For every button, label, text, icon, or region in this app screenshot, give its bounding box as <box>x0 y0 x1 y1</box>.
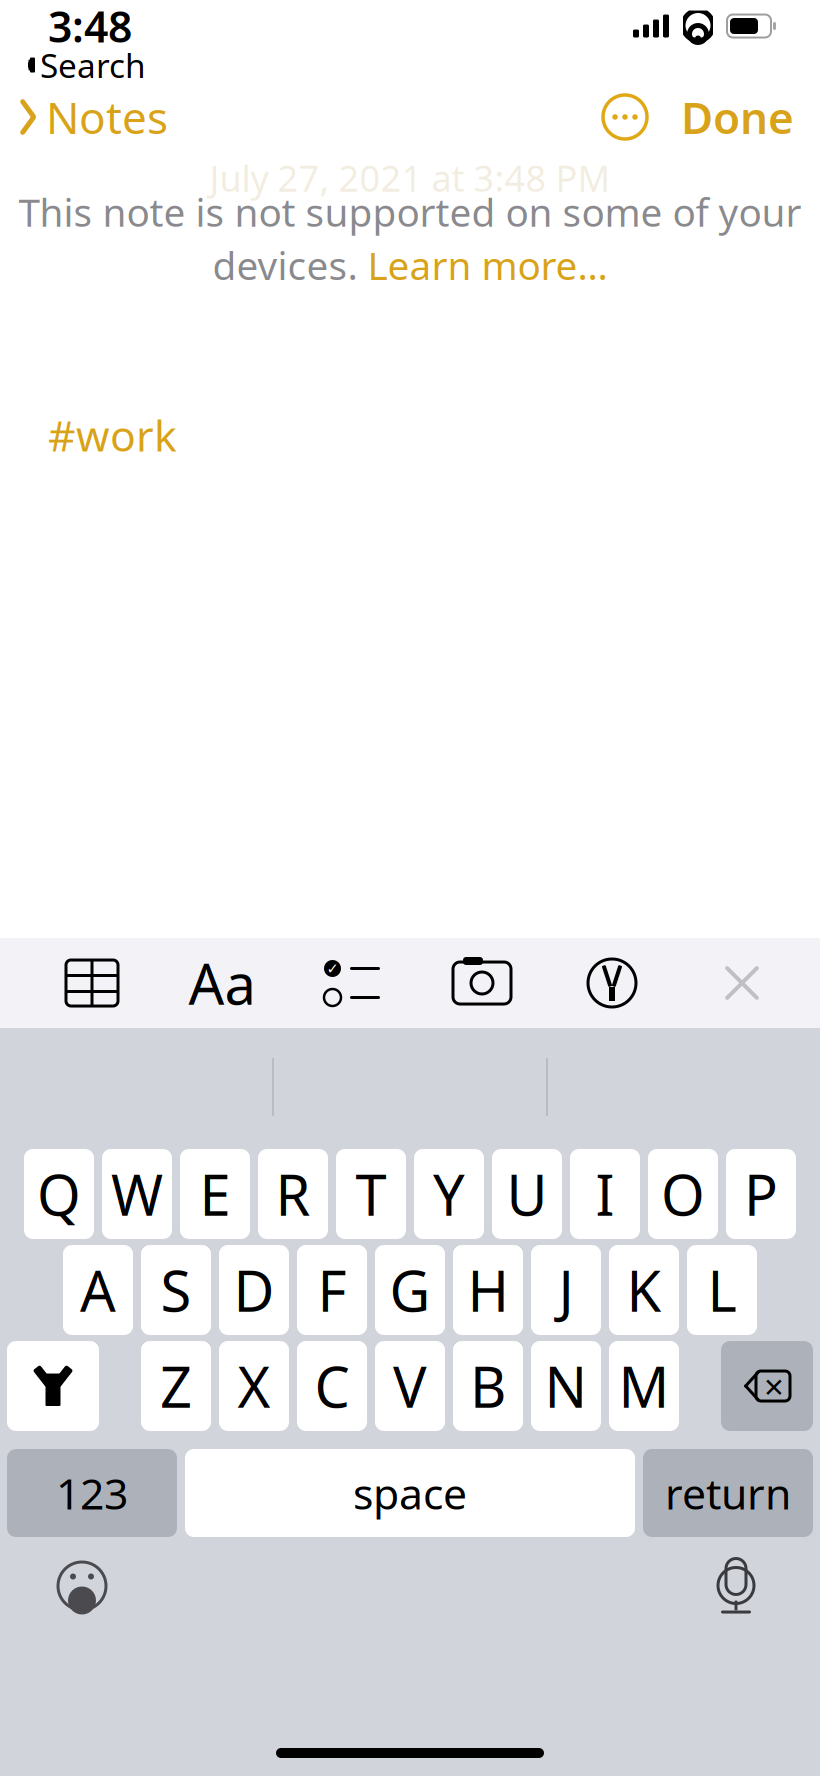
staticText: Q <box>37 1157 81 1231</box>
staticText: A <box>80 1253 116 1327</box>
staticText: G <box>389 1253 430 1327</box>
button[interactable]: X <box>219 1341 289 1431</box>
button[interactable]: A <box>63 1245 133 1335</box>
staticText: 3:48 <box>48 0 132 54</box>
button[interactable]: Markup <box>572 938 652 1028</box>
button[interactable]: S <box>141 1245 211 1335</box>
button[interactable]: V <box>375 1341 445 1431</box>
staticText: P <box>744 1157 778 1231</box>
button[interactable]: E <box>180 1149 250 1239</box>
staticText: O <box>661 1157 705 1231</box>
staticText: Learn more... <box>367 239 607 291</box>
button[interactable]: P <box>726 1149 796 1239</box>
button[interactable]: O <box>648 1149 718 1239</box>
button[interactable]: T <box>336 1149 406 1239</box>
button[interactable]: G <box>375 1245 445 1335</box>
button[interactable]: M <box>609 1341 679 1431</box>
button[interactable]: Checklist <box>312 938 392 1028</box>
button[interactable]: Dictation <box>696 1546 776 1626</box>
staticText: T <box>355 1157 386 1231</box>
button[interactable]: D <box>219 1245 289 1335</box>
staticText: J <box>558 1253 573 1327</box>
staticText: return <box>665 1465 791 1521</box>
staticText: Search <box>40 43 146 87</box>
button[interactable]: B <box>453 1341 523 1431</box>
button[interactable]: Search <box>0 48 156 82</box>
button[interactable]: Done <box>653 80 820 154</box>
staticText: D <box>233 1253 274 1327</box>
button[interactable]: H <box>453 1245 523 1335</box>
button[interactable]: J <box>531 1245 601 1335</box>
staticText: Y <box>433 1157 465 1231</box>
button[interactable]: Shift <box>7 1341 99 1431</box>
staticText: devices. <box>212 239 367 291</box>
button[interactable]: F <box>297 1245 367 1335</box>
staticText: K <box>626 1253 661 1327</box>
staticText: Notes <box>46 88 168 146</box>
staticText: July 27, 2021 at 3:48 PM <box>209 154 610 202</box>
staticText: R <box>275 1157 310 1231</box>
button[interactable]: More options <box>597 89 653 145</box>
staticText: S <box>160 1253 191 1327</box>
button[interactable]: I <box>570 1149 640 1239</box>
button[interactable]: Y <box>414 1149 484 1239</box>
button[interactable]: Z <box>141 1341 211 1431</box>
button[interactable]: Learn more... <box>367 239 607 291</box>
button[interactable]: C <box>297 1341 367 1431</box>
button[interactable]: Table <box>52 938 132 1028</box>
button[interactable]: R <box>258 1149 328 1239</box>
staticText: ✓ <box>326 960 338 977</box>
staticText: Aa <box>188 946 255 1020</box>
button[interactable]: Close keyboard <box>702 938 782 1028</box>
button[interactable]: W <box>102 1149 172 1239</box>
staticText: X <box>237 1349 270 1423</box>
button[interactable]: Q <box>24 1149 94 1239</box>
staticText: U <box>506 1157 547 1231</box>
button[interactable]: 123 <box>7 1449 177 1537</box>
staticText: L <box>707 1253 736 1327</box>
button[interactable]: Format <box>182 938 262 1028</box>
staticText: F <box>317 1253 346 1327</box>
button[interactable]: K <box>609 1245 679 1335</box>
staticText: #work <box>48 407 177 463</box>
staticText: W <box>111 1157 163 1231</box>
button[interactable]: Delete <box>721 1341 813 1431</box>
button[interactable]: Emoji <box>42 1546 122 1626</box>
staticText: H <box>467 1253 508 1327</box>
staticText: V <box>393 1349 427 1423</box>
staticText: × <box>764 1363 784 1409</box>
staticText: N <box>544 1349 587 1423</box>
button[interactable]: space <box>185 1449 635 1537</box>
staticText: B <box>470 1349 506 1423</box>
button[interactable]: L <box>687 1245 757 1335</box>
staticText: Z <box>160 1349 192 1423</box>
staticText: M <box>618 1349 669 1423</box>
staticText: E <box>199 1157 230 1231</box>
staticText: space <box>353 1465 467 1521</box>
staticText: Done <box>681 88 794 146</box>
button[interactable]: #work <box>48 403 177 467</box>
button[interactable]: return <box>643 1449 813 1537</box>
button[interactable]: U <box>492 1149 562 1239</box>
staticText: 123 <box>56 1465 128 1521</box>
staticText: C <box>314 1349 349 1423</box>
staticText: This note is not supported on some of yo… <box>18 186 801 237</box>
staticText: I <box>595 1157 614 1231</box>
button[interactable]: N <box>531 1341 601 1431</box>
button[interactable]: Camera <box>442 938 522 1028</box>
button[interactable]: Notes <box>0 82 168 152</box>
